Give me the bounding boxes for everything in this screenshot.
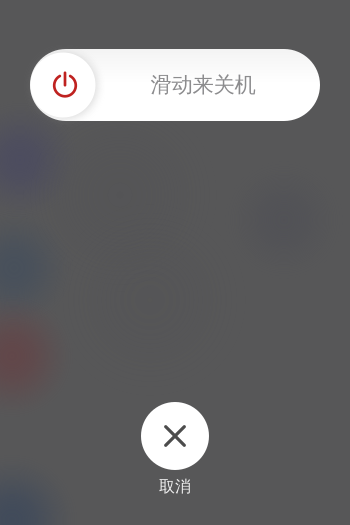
button[interactable]: 滑动来关机 [30,49,320,121]
staticText: 滑动来关机 [150,72,255,98]
staticText: 取消 [159,477,191,496]
button[interactable]: 取消 [120,397,230,501]
